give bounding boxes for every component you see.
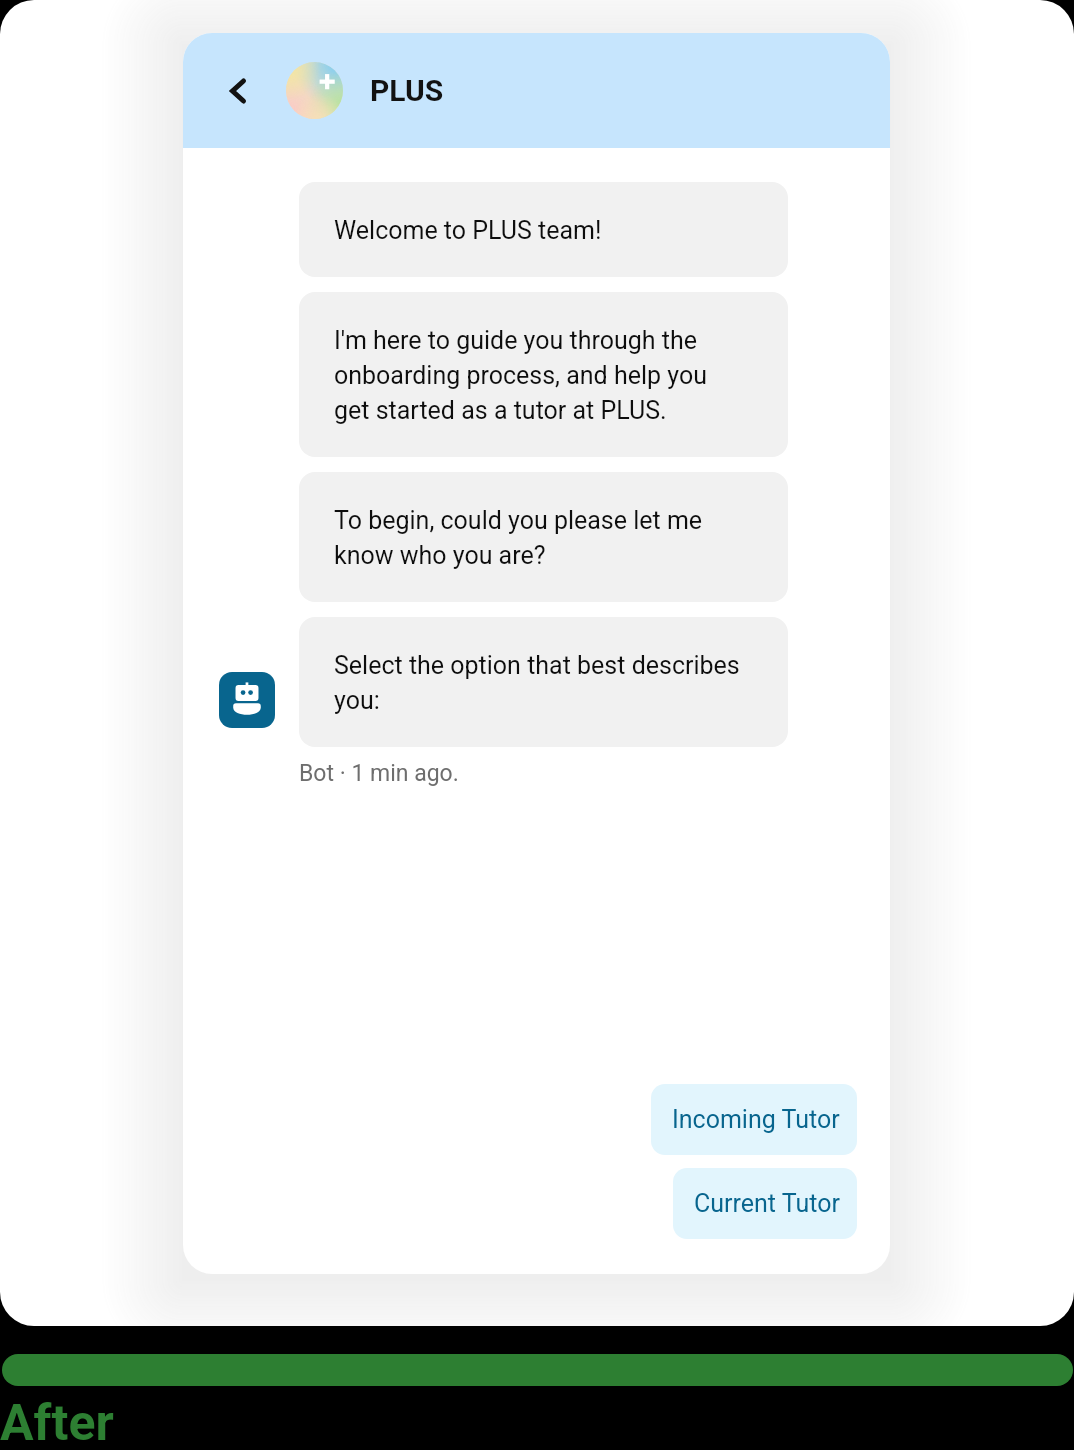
button[interactable]: I'm here to guide you through the onboar… bbox=[299, 292, 788, 457]
button[interactable]: Back bbox=[215, 67, 263, 115]
staticText: To begin, could you please let me know w… bbox=[334, 502, 747, 572]
staticText: PLUS bbox=[370, 73, 444, 108]
staticText: Select the option that best describes yo… bbox=[334, 647, 747, 717]
staticText: Welcome to PLUS team! bbox=[334, 212, 602, 247]
staticText: Incoming Tutor bbox=[672, 1105, 840, 1134]
staticText: I'm here to guide you through the onboar… bbox=[334, 322, 747, 427]
button[interactable]: Welcome to PLUS team! bbox=[299, 182, 788, 277]
button[interactable]: Select the option that best describes yo… bbox=[299, 617, 788, 747]
staticText: Bot · 1 min ago. bbox=[299, 760, 459, 787]
button[interactable]: Current Tutor bbox=[673, 1168, 857, 1239]
button[interactable]: To begin, could you please let me know w… bbox=[299, 472, 788, 602]
staticText: After bbox=[0, 1394, 114, 1450]
staticText: Current Tutor bbox=[694, 1189, 840, 1218]
button[interactable]: Incoming Tutor bbox=[651, 1084, 857, 1155]
